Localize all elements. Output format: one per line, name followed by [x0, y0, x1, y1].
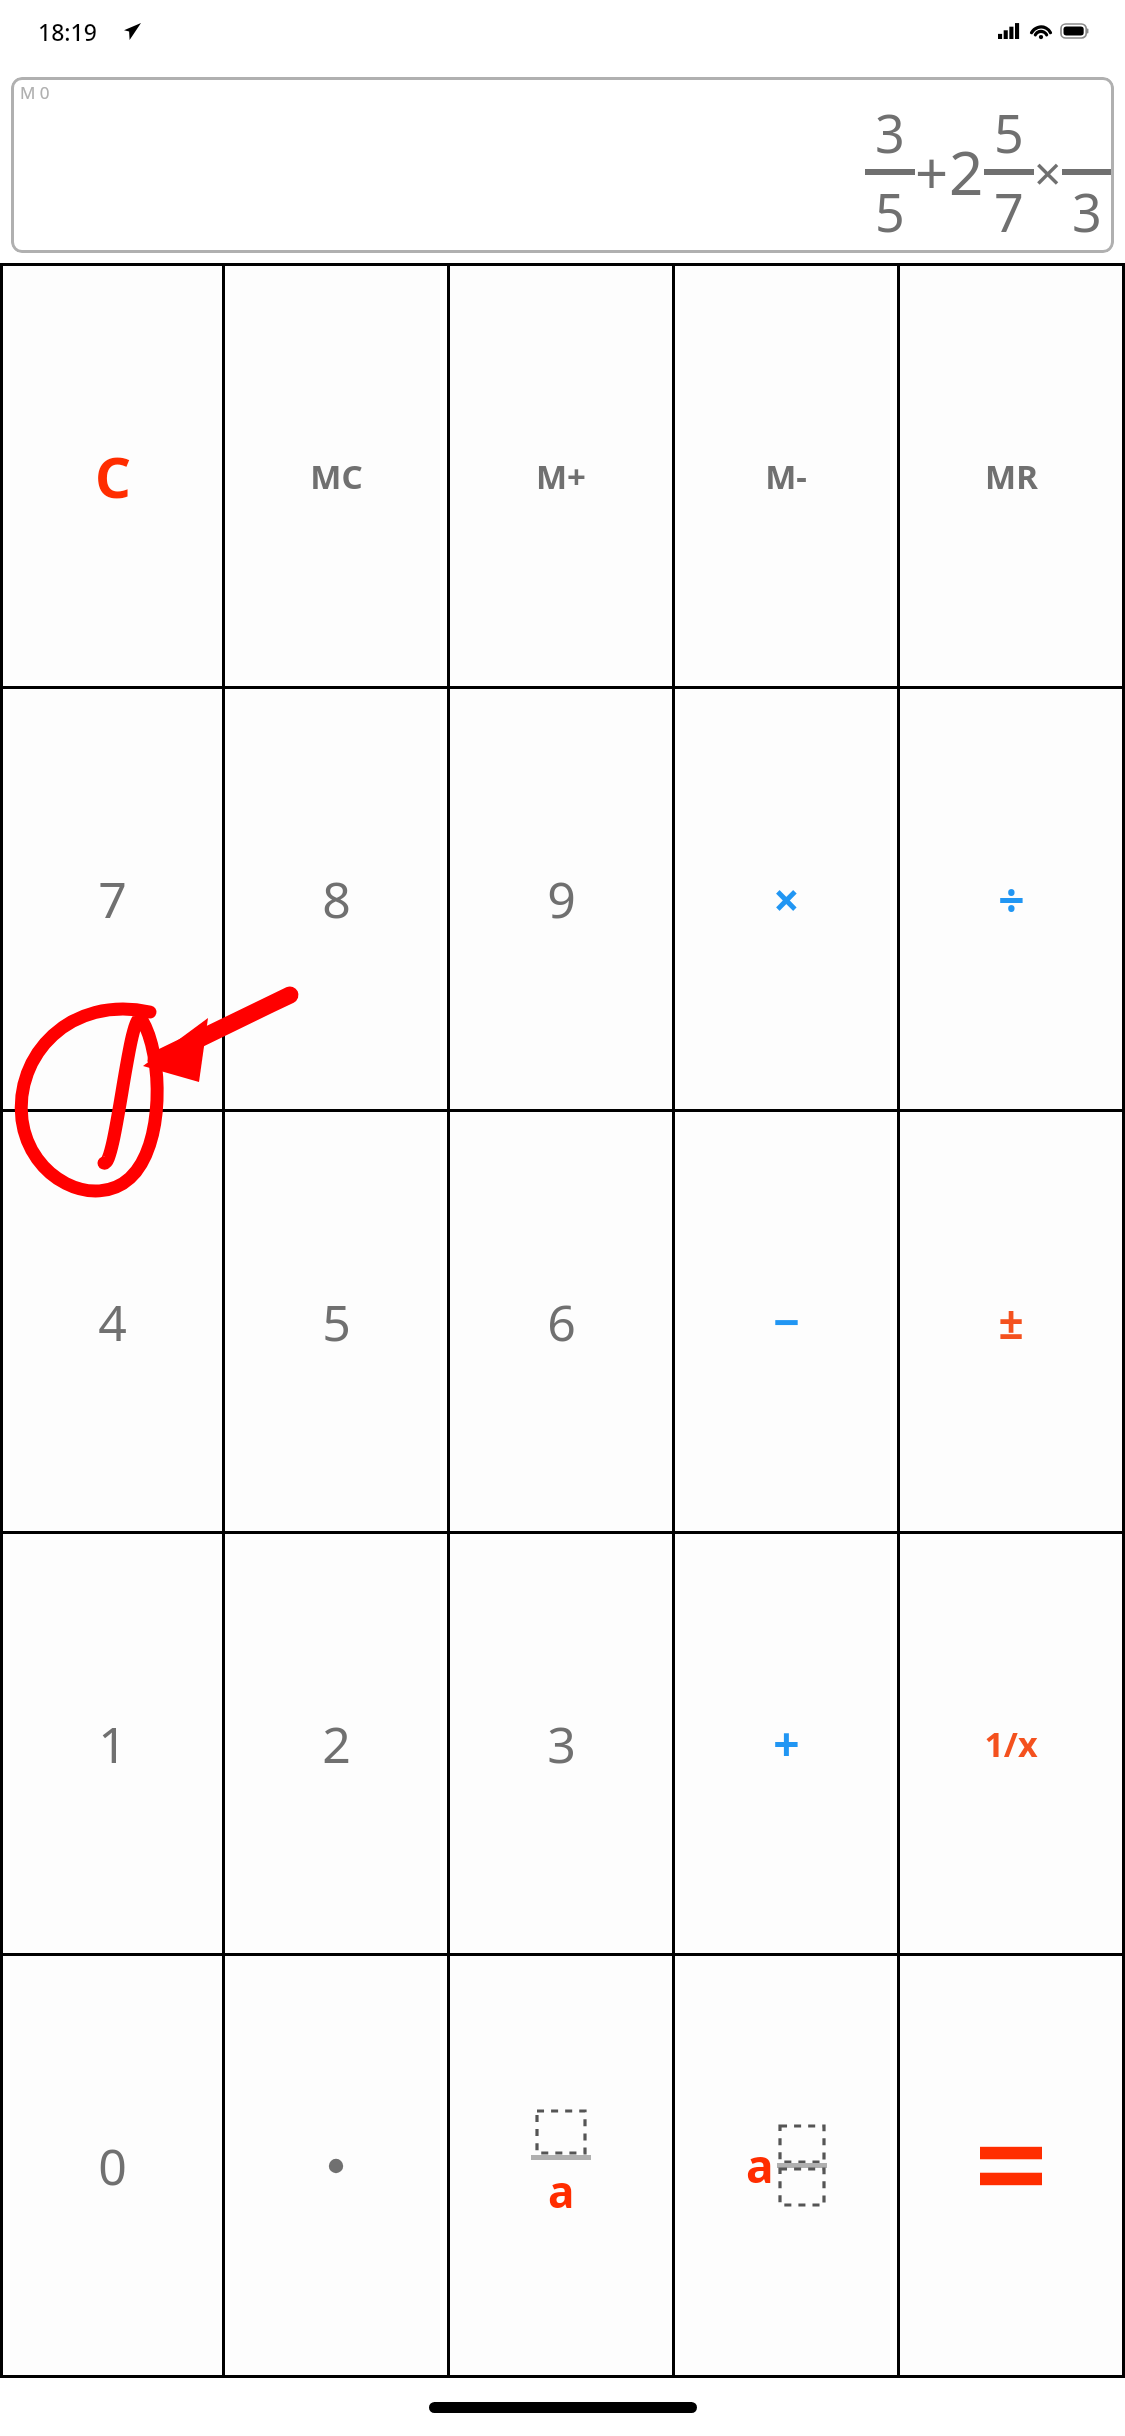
staticText: M- [765, 454, 807, 499]
staticText: 9 [547, 865, 576, 933]
button[interactable]: 5 [225, 1112, 447, 1531]
staticText: 5 [994, 97, 1024, 168]
button[interactable]: MR [900, 266, 1122, 686]
staticText: 18:19 [38, 16, 97, 47]
staticText: + [915, 133, 949, 212]
staticText: × [1034, 140, 1062, 205]
button[interactable]: 6 [450, 1112, 672, 1531]
staticText: ± [998, 1292, 1024, 1352]
staticText: 1/x [984, 1721, 1038, 1767]
button[interactable]: C [3, 266, 222, 686]
button[interactable]: 2 [225, 1534, 447, 1953]
staticText: 4 [98, 1288, 127, 1356]
button[interactable] [225, 1956, 447, 2375]
staticText: M+ [536, 454, 586, 499]
staticText: + [773, 1712, 800, 1775]
button[interactable]: M- [675, 266, 897, 686]
button[interactable]: 1/x [900, 1534, 1122, 1953]
button[interactable]: MC [225, 266, 447, 686]
button[interactable]: M 0 [11, 77, 1114, 253]
staticText: 3 [547, 1710, 576, 1778]
staticText: 2 [949, 131, 984, 213]
staticText: a [746, 2134, 774, 2197]
button[interactable]: 8 [225, 689, 447, 1109]
staticText: 0 [98, 2132, 127, 2200]
staticText: ÷ [998, 868, 1025, 931]
staticText: C [95, 438, 131, 514]
button[interactable]: 9 [450, 689, 672, 1109]
staticText: 2 [322, 1710, 351, 1778]
staticText: 3 [1072, 176, 1102, 247]
button[interactable]: Mixed number [675, 1956, 897, 2375]
button[interactable]: Fraction [450, 1956, 672, 2375]
button[interactable]: 1 [3, 1534, 222, 1953]
staticText: 5 [875, 176, 905, 247]
staticText: × [773, 868, 800, 931]
button[interactable]: M+ [450, 266, 672, 686]
button[interactable]: Equals [900, 1956, 1122, 2375]
button[interactable]: 7 [3, 689, 222, 1109]
staticText: M 0 [20, 81, 50, 104]
staticText: 7 [994, 176, 1024, 247]
staticText: 7 [98, 865, 127, 933]
button[interactable]: 0 [3, 1956, 222, 2375]
staticText: 3 [875, 97, 905, 168]
button[interactable]: + [675, 1534, 897, 1953]
staticText: − [773, 1290, 800, 1353]
staticText: 5 [322, 1288, 351, 1356]
staticText: MR [985, 454, 1038, 499]
button[interactable]: − [675, 1112, 897, 1531]
button[interactable]: ± [900, 1112, 1122, 1531]
staticText: MC [310, 454, 363, 499]
staticText: a [548, 2161, 575, 2221]
button[interactable]: ÷ [900, 689, 1122, 1109]
button[interactable]: × [675, 689, 897, 1109]
button[interactable]: 3 [450, 1534, 672, 1953]
staticText: 8 [322, 865, 351, 933]
staticText: 1 [98, 1710, 127, 1778]
staticText: 6 [547, 1288, 576, 1356]
button[interactable]: 4 [3, 1112, 222, 1531]
